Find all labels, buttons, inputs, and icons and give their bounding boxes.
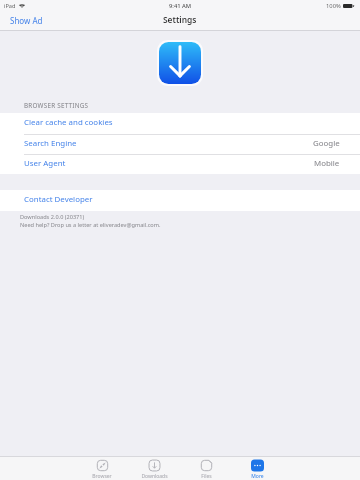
button[interactable]: Browser [78,457,126,480]
button[interactable]: Files [182,457,230,480]
staticText: More [251,473,264,480]
other: Wi-Fi signal [19,3,25,8]
staticText: Show Ad [10,15,43,26]
staticText: Files [201,473,212,480]
staticText: iPad [4,2,16,10]
button[interactable]: Contact Developer [0,190,360,211]
staticText: 9:41 AM [169,2,192,10]
staticText: Downloads [141,473,168,480]
staticText: Settings [163,14,197,25]
button[interactable]: User Agent [0,154,360,174]
button[interactable]: Show Ad [0,15,43,28]
staticText: Contact Developer [24,194,93,205]
staticText: Browser [92,473,112,480]
staticText: Mobile [314,158,340,169]
button[interactable]: Search Engine [0,134,360,154]
staticText: Need help? Drop us a letter at eliverade… [20,221,161,229]
button[interactable]: Downloads [130,457,178,480]
staticText: BROWSER SETTINGS [24,101,89,110]
staticText: Google [313,138,340,149]
staticText: Downloads 2.0.0 (20371) [20,213,85,221]
button[interactable]: Clear cache and cookies [0,113,360,134]
staticText: Search Engine [24,138,77,149]
other: Battery 100 percent [343,4,354,8]
staticText: Clear cache and cookies [24,117,113,128]
staticText: 100% [326,2,341,10]
other: Downloads app icon [159,42,201,84]
button[interactable]: More [233,457,281,480]
staticText: User Agent [24,158,66,169]
